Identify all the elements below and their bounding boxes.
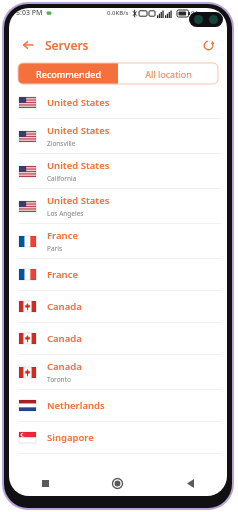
staticText: United States bbox=[47, 159, 110, 172]
button[interactable]: Home bbox=[81, 470, 154, 496]
staticText: Los Angeles bbox=[47, 209, 84, 218]
staticText: Singapore bbox=[47, 431, 94, 444]
staticText: Netherlands bbox=[47, 399, 105, 412]
staticText: Canada bbox=[47, 300, 82, 313]
button[interactable]: Back bbox=[18, 35, 38, 55]
button[interactable]: Back bbox=[154, 470, 227, 496]
staticText: All location bbox=[145, 68, 192, 80]
staticText: Recommended bbox=[36, 68, 101, 80]
staticText: France bbox=[47, 268, 78, 281]
staticText: 94 bbox=[191, 9, 198, 17]
button[interactable]: Recents bbox=[9, 470, 81, 496]
button[interactable]: All location bbox=[118, 63, 218, 84]
button[interactable]: Netherlands bbox=[9, 390, 227, 421]
staticText: United States bbox=[47, 96, 110, 109]
staticText: Servers bbox=[45, 37, 89, 53]
staticText: Zionsville bbox=[47, 139, 76, 148]
button[interactable]: United States bbox=[9, 87, 227, 118]
button[interactable]: Recommended bbox=[18, 63, 118, 84]
button[interactable]: United States bbox=[9, 154, 227, 188]
staticText: United States bbox=[47, 194, 110, 207]
button[interactable]: Canada bbox=[9, 355, 227, 389]
button[interactable]: Singapore bbox=[9, 422, 227, 453]
button[interactable]: Canada bbox=[9, 323, 227, 354]
staticText: United States bbox=[47, 124, 110, 137]
staticText: 5:03 PM bbox=[16, 8, 43, 18]
button[interactable]: Refresh bbox=[198, 35, 218, 55]
button[interactable]: United States bbox=[9, 189, 227, 223]
staticText: 0.0KB/s bbox=[107, 9, 129, 17]
staticText: Paris bbox=[47, 244, 63, 253]
staticText: Canada bbox=[47, 360, 82, 373]
button[interactable]: United States bbox=[9, 119, 227, 153]
button[interactable]: Canada bbox=[9, 291, 227, 322]
staticText: Canada bbox=[47, 332, 82, 345]
button[interactable]: France bbox=[9, 224, 227, 258]
staticText: Toronto bbox=[47, 375, 71, 384]
staticText: France bbox=[47, 229, 78, 242]
staticText: California bbox=[47, 174, 77, 183]
button[interactable]: France bbox=[9, 259, 227, 290]
